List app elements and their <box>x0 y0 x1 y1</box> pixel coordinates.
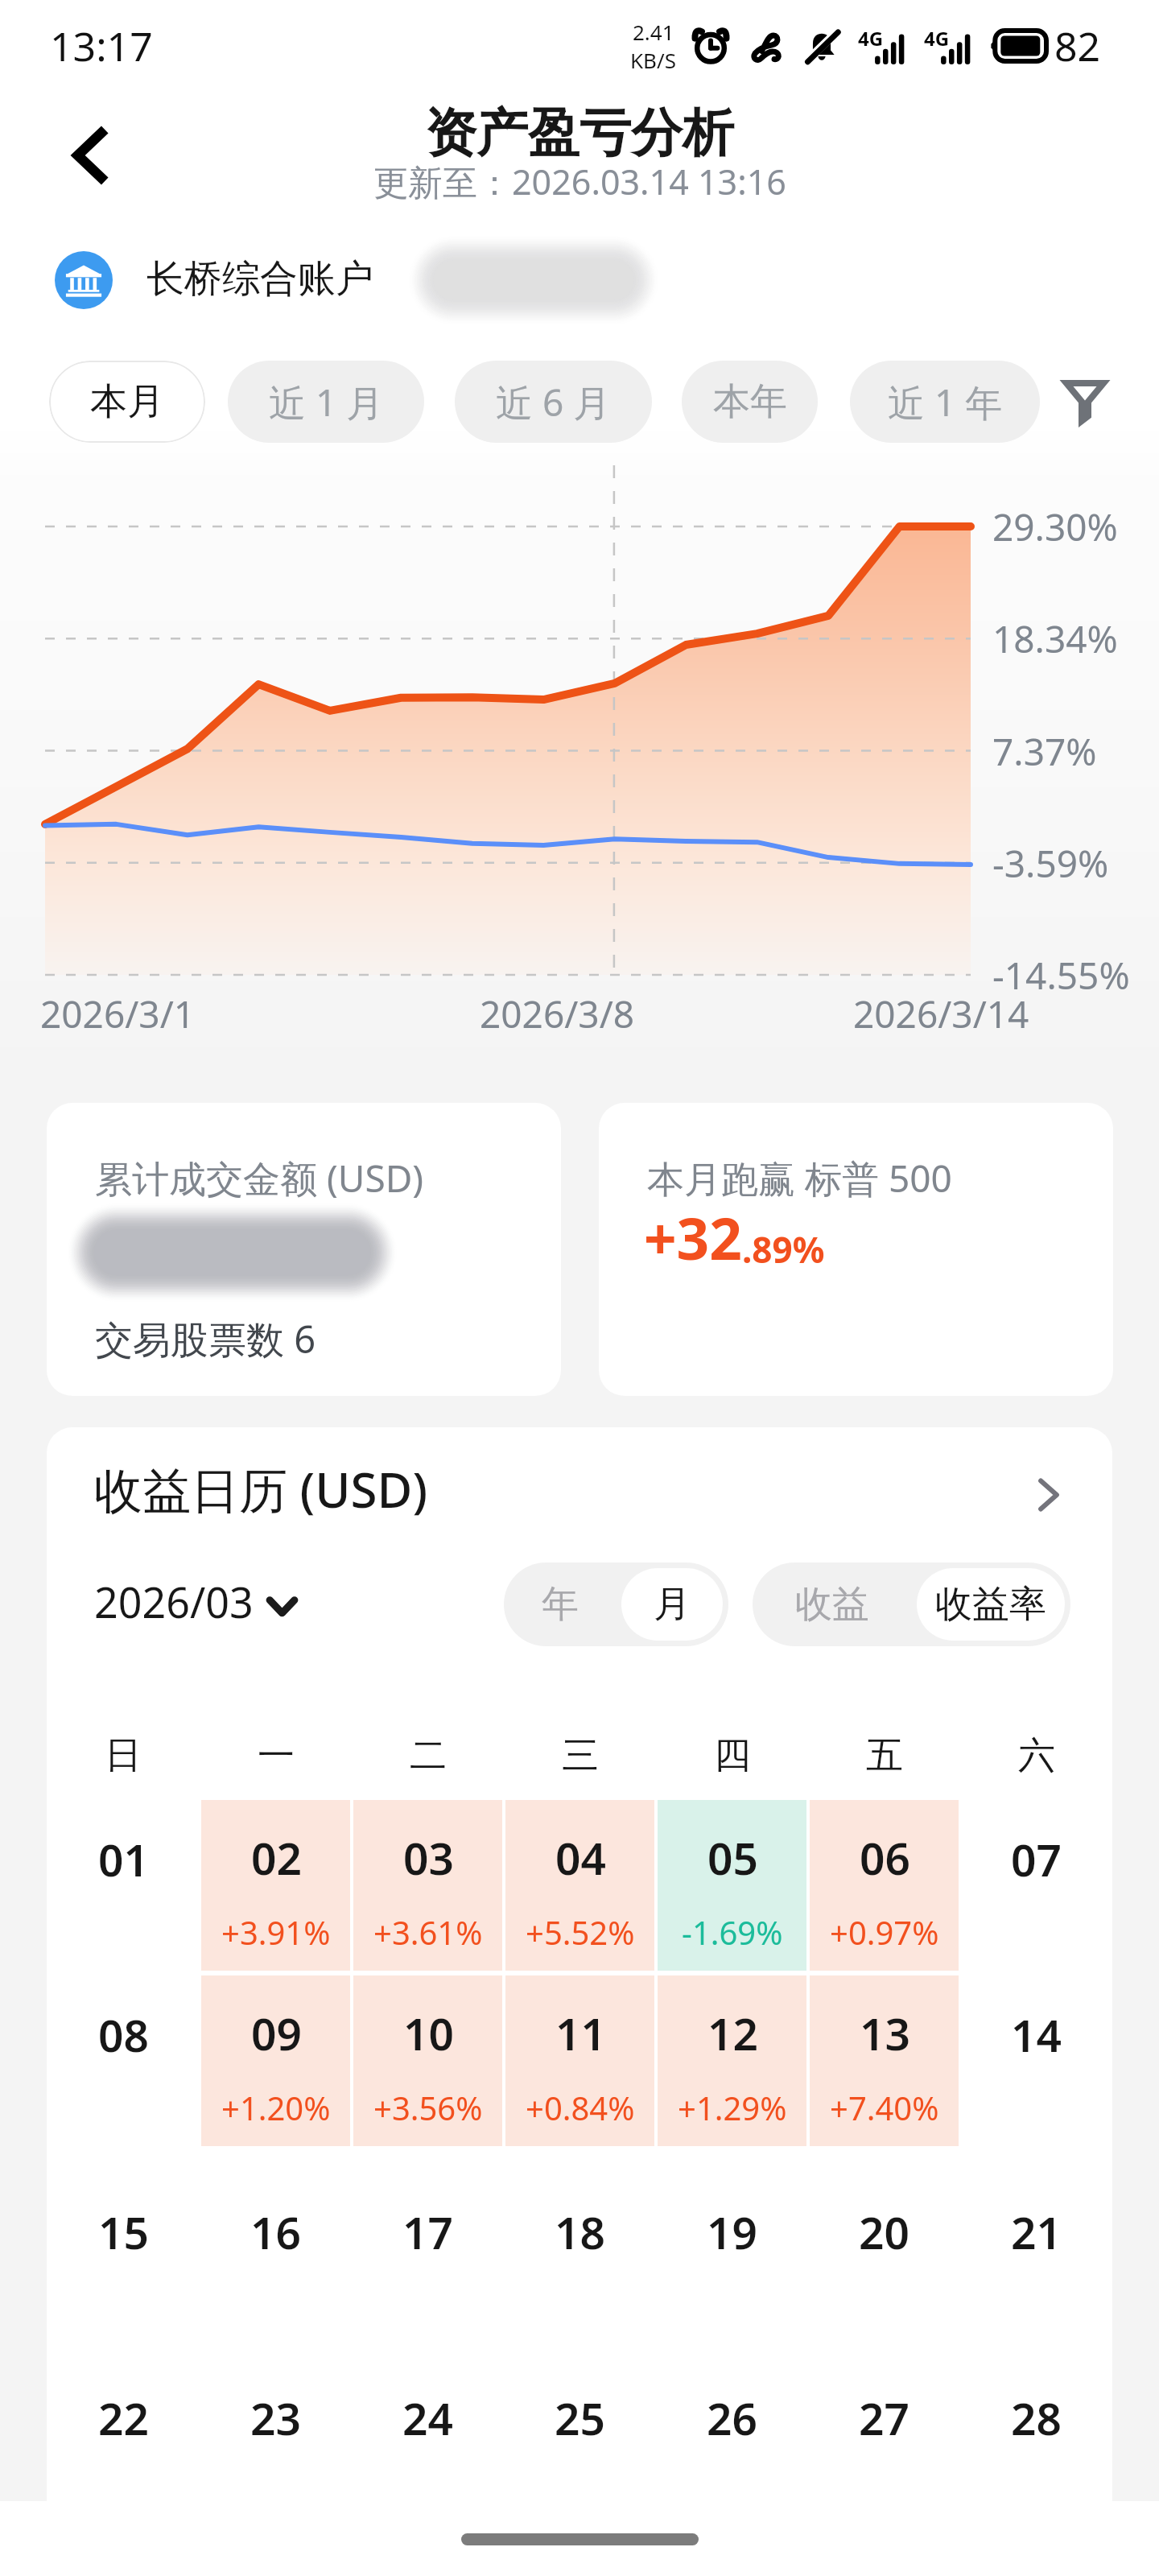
button[interactable]: 26 <box>658 2337 806 2508</box>
staticText: 4G <box>924 25 950 52</box>
button[interactable]: 16 <box>201 2151 350 2322</box>
button[interactable]: 14 <box>962 1975 1111 2146</box>
staticText: +5.52% <box>526 1910 635 1954</box>
button[interactable]: 03 <box>353 1800 502 1971</box>
staticText: 27 <box>859 2388 909 2448</box>
button[interactable]: 25 <box>505 2337 654 2508</box>
staticText: 04 <box>555 1827 606 1888</box>
staticText: 18.34% <box>992 613 1118 664</box>
staticText: 4G <box>858 25 884 52</box>
button[interactable]: 17 <box>353 2151 502 2322</box>
staticText: 23 <box>250 2388 301 2448</box>
staticText: 07 <box>1011 1829 1062 1889</box>
button[interactable]: 13 <box>810 1975 959 2146</box>
button[interactable]: 本月跑赢 标普 500 <box>599 1103 1113 1396</box>
staticText: 四 <box>714 1732 751 1779</box>
staticText: 06 <box>860 1827 910 1888</box>
button[interactable]: 01 <box>48 1800 198 1971</box>
staticText: 25 <box>555 2388 605 2448</box>
staticText: KB/S <box>630 46 676 74</box>
button[interactable]: 23 <box>201 2337 350 2508</box>
staticText: 18 <box>555 2202 605 2262</box>
button[interactable]: More <box>1021 1467 1077 1523</box>
staticText: +32 <box>644 1199 742 1277</box>
button[interactable]: 08 <box>48 1975 198 2146</box>
button[interactable]: 近 6 月 <box>455 361 652 443</box>
button[interactable]: 18 <box>505 2151 654 2322</box>
button[interactable]: 27 <box>810 2337 959 2508</box>
button[interactable]: 累计成交金额 (USD) <box>47 1103 561 1396</box>
staticText: 五 <box>866 1732 903 1779</box>
staticText: 15 <box>98 2202 149 2262</box>
staticText: 21 <box>1011 2202 1062 2262</box>
staticText: 近 1 年 <box>888 377 1003 427</box>
button[interactable]: 09 <box>201 1975 350 2146</box>
staticText: 7.37% <box>992 726 1097 777</box>
staticText: +1.29% <box>678 2086 787 2129</box>
button[interactable]: 15 <box>48 2151 198 2322</box>
staticText: 01 <box>98 1829 149 1889</box>
button[interactable]: 21 <box>962 2151 1111 2322</box>
button[interactable]: 本年 <box>682 361 818 443</box>
button[interactable]: 11 <box>505 1975 654 2146</box>
staticText: 29.30% <box>992 502 1118 552</box>
staticText: 一 <box>258 1732 295 1779</box>
button[interactable]: 10 <box>353 1975 502 2146</box>
button[interactable]: 04 <box>505 1800 654 1971</box>
staticText: 近 1 月 <box>269 377 384 427</box>
button[interactable]: 月 <box>621 1568 723 1641</box>
button[interactable]: 近 1 月 <box>228 361 424 443</box>
button[interactable]: 长桥综合账户 <box>0 238 1159 322</box>
button[interactable]: 收益 <box>758 1568 905 1641</box>
button[interactable]: 19 <box>658 2151 806 2322</box>
button[interactable]: 24 <box>353 2337 502 2508</box>
staticText: 22 <box>98 2388 149 2448</box>
staticText: 28 <box>1011 2388 1062 2448</box>
staticText: +0.84% <box>526 2086 635 2129</box>
staticText: 长桥综合账户 <box>146 255 373 303</box>
button[interactable]: 02 <box>201 1800 350 1971</box>
staticText: .89% <box>742 1225 825 1274</box>
button[interactable]: Back <box>52 117 129 194</box>
staticText: 本月 <box>90 378 164 425</box>
button[interactable]: 年 <box>509 1568 610 1641</box>
staticText: 05 <box>707 1827 758 1888</box>
staticText: 12 <box>707 2003 758 2063</box>
staticText: 82 <box>1054 19 1101 73</box>
staticText: 二 <box>410 1732 447 1779</box>
button[interactable]: 收益率 <box>917 1568 1065 1641</box>
staticText: 2026/3/1 <box>40 989 196 1039</box>
staticText: 09 <box>251 2003 302 2063</box>
staticText: -3.59% <box>992 838 1109 889</box>
staticText: 更新至：2026.03.14 13:16 <box>373 158 786 205</box>
staticText: 本年 <box>713 378 787 425</box>
staticText: 收益 <box>795 1581 869 1628</box>
button[interactable]: 本月 <box>49 361 205 443</box>
button[interactable]: 06 <box>810 1800 959 1971</box>
staticText: 收益日历 (USD) <box>94 1456 428 1522</box>
staticText: 13 <box>860 2003 910 2063</box>
staticText: 年 <box>542 1581 579 1628</box>
staticText: 19 <box>707 2202 757 2262</box>
staticText: 16 <box>250 2202 301 2262</box>
staticText: 02 <box>251 1827 302 1888</box>
staticText: 2026/3/8 <box>480 989 635 1039</box>
staticText: -14.55% <box>992 950 1130 1001</box>
button[interactable]: 07 <box>962 1800 1111 1971</box>
staticText: 2.41 <box>633 18 674 46</box>
staticText: 26 <box>707 2388 757 2448</box>
button[interactable]: 05 <box>658 1800 806 1971</box>
button[interactable]: Filter <box>1053 361 1117 443</box>
button[interactable]: 20 <box>810 2151 959 2322</box>
staticText: 收益率 <box>935 1581 1046 1628</box>
staticText: +7.40% <box>830 2086 939 2129</box>
staticText: +3.91% <box>221 1910 331 1954</box>
staticText: 近 6 月 <box>496 377 611 427</box>
staticText: 20 <box>859 2202 909 2262</box>
staticText: 三 <box>562 1732 599 1779</box>
button[interactable]: 12 <box>658 1975 806 2146</box>
staticText: 2026/03 <box>94 1573 254 1630</box>
button[interactable]: 22 <box>48 2337 198 2508</box>
button[interactable]: 近 1 年 <box>850 361 1040 443</box>
button[interactable]: 28 <box>962 2337 1111 2508</box>
